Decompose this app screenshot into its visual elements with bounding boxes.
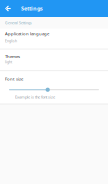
staticText: Themes <box>5 53 20 59</box>
staticText: Example is the font size <box>15 94 55 100</box>
staticText: Settings <box>21 5 43 12</box>
button[interactable]: Back <box>0 0 16 16</box>
staticText: Font size <box>5 76 23 82</box>
staticText: Application language <box>5 31 49 36</box>
staticText: light <box>5 60 12 64</box>
staticText: English <box>5 39 17 43</box>
button[interactable]: Themes <box>0 50 108 70</box>
staticText: General Settings <box>5 21 32 25</box>
button[interactable]: Application language <box>0 28 108 49</box>
